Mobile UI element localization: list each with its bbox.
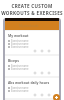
button[interactable]: My workout (5, 31, 59, 54)
button[interactable]: Action (33, 49, 37, 53)
staticText: CREATE CUSTOM (11, 3, 53, 9)
button[interactable]: Action (40, 93, 44, 97)
staticText: Abs workout daily hours (8, 80, 50, 85)
button[interactable]: Biceps (5, 56, 59, 76)
button[interactable]: Action (33, 71, 37, 75)
staticText: Exercise name (11, 86, 29, 89)
button[interactable]: Action (47, 71, 51, 75)
staticText: WORKOUTS & EXERCISES (1, 10, 63, 16)
staticText: My workout (8, 33, 29, 38)
button[interactable]: Add workout (53, 94, 60, 100)
staticText: My workouts (19, 24, 39, 28)
staticText: Exercise name (11, 42, 29, 45)
staticText: Exercise name (11, 67, 29, 70)
staticText: Biceps (8, 58, 19, 63)
staticText: Exercise name (11, 64, 29, 67)
staticText: Exercise name (11, 89, 29, 92)
button[interactable]: Action (40, 49, 44, 53)
button[interactable]: Action (47, 93, 51, 97)
staticText: Exercise name (11, 45, 29, 48)
button[interactable]: Abs workout daily hours (5, 78, 59, 98)
button[interactable]: Action (33, 93, 37, 97)
staticText: Exercise name (11, 39, 29, 42)
button[interactable]: Action (40, 71, 44, 75)
button[interactable]: Action (47, 49, 51, 53)
